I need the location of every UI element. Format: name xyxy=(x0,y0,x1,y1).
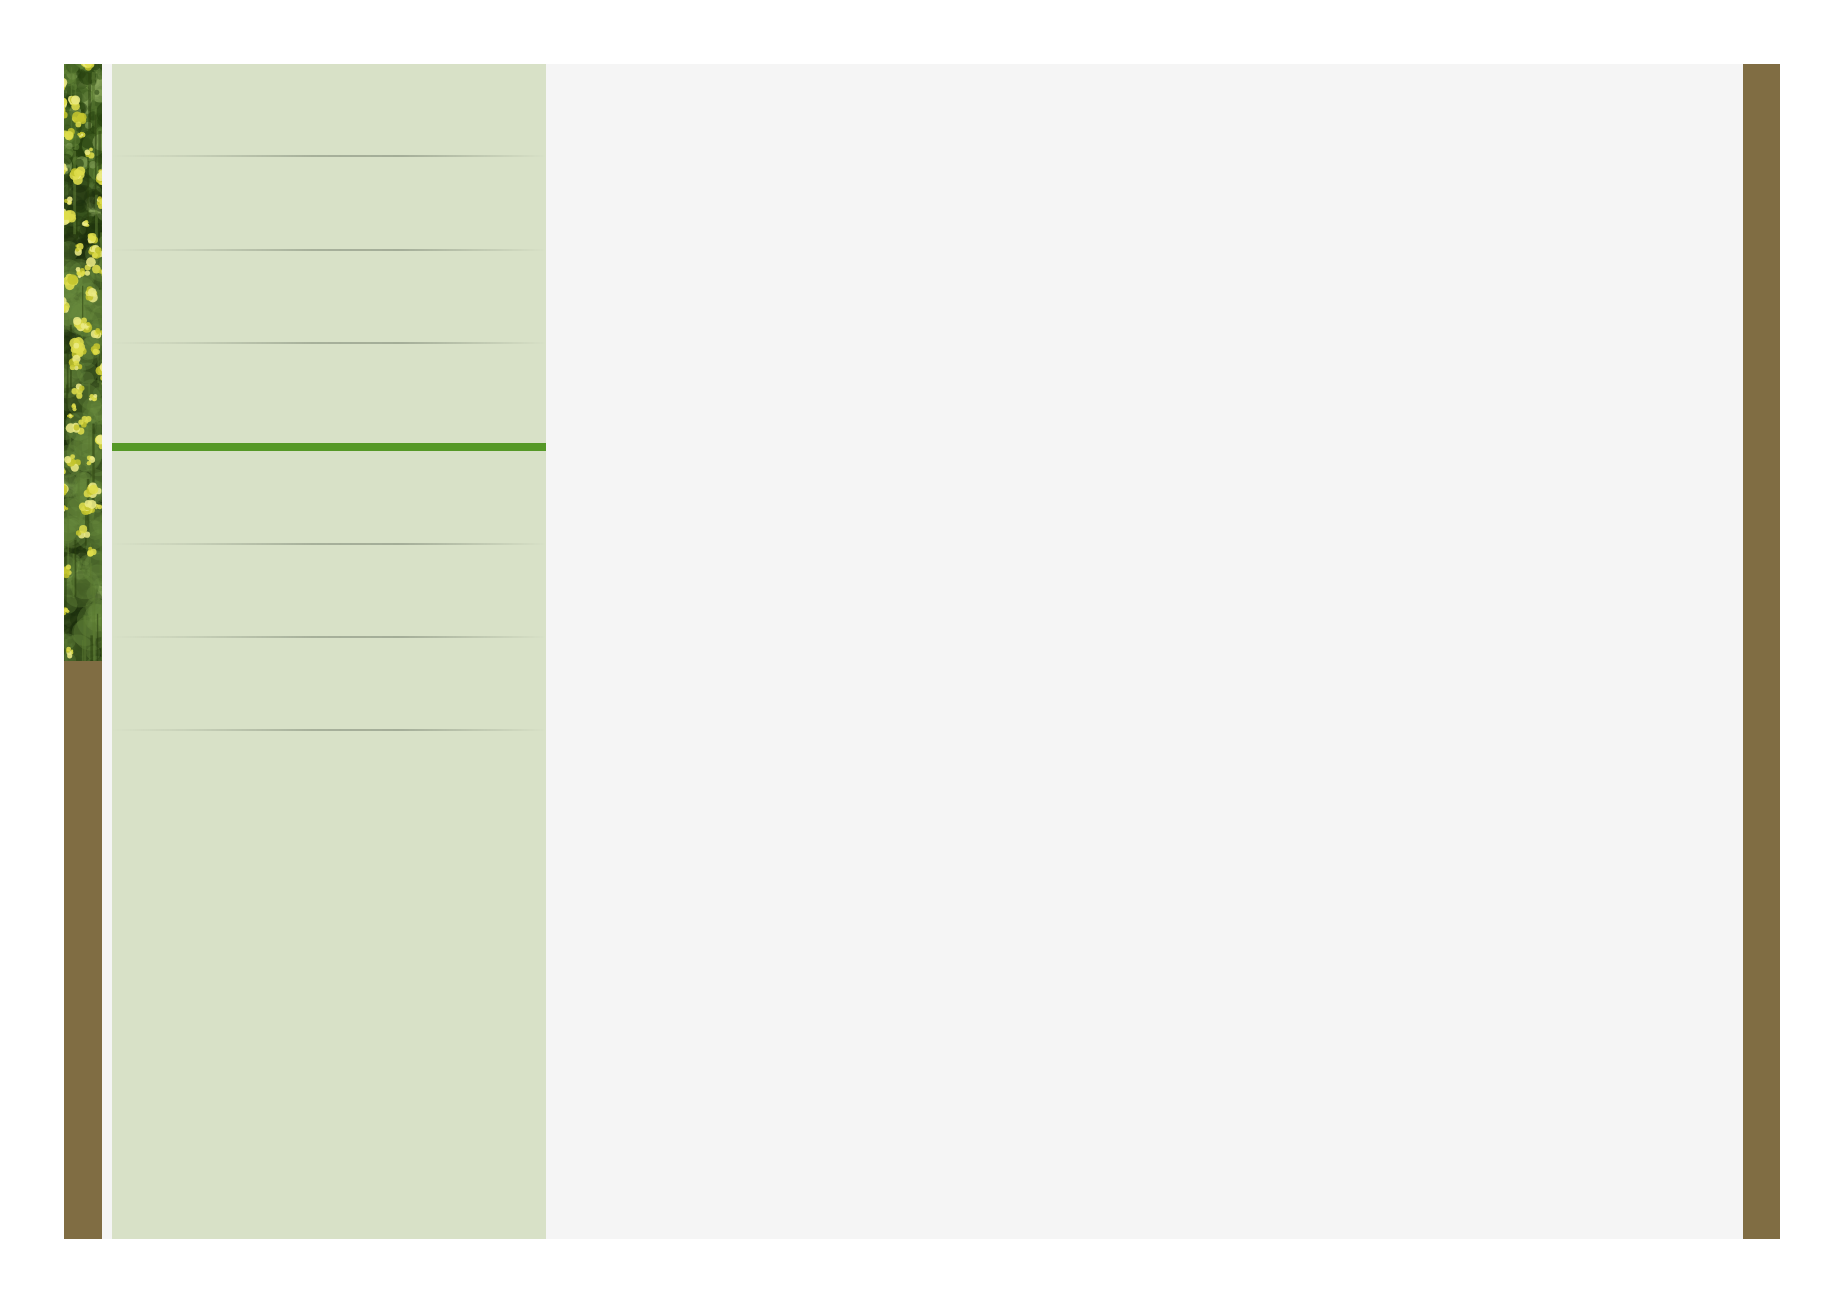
button[interactable]: List item 7 xyxy=(112,638,546,731)
button[interactable]: List item 5 xyxy=(112,451,546,545)
button[interactable]: List item 1 xyxy=(112,64,546,157)
button[interactable]: List item 2 xyxy=(112,157,546,251)
button[interactable]: List item 6 xyxy=(112,545,546,638)
button[interactable]: List item 3 xyxy=(112,251,546,344)
button[interactable]: Navigation rail xyxy=(64,64,102,1239)
